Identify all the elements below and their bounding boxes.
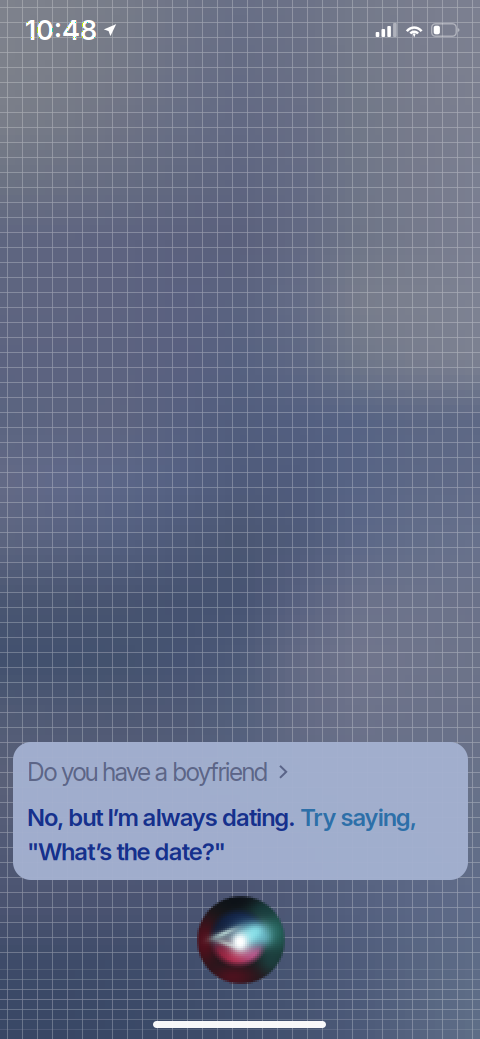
button[interactable]: Do you have a boyfriend — [13, 742, 468, 880]
staticText: 10:48 — [25, 13, 97, 47]
button[interactable]: Siri — [193, 892, 289, 988]
staticText: Do you have a boyfriend — [27, 757, 269, 787]
staticText: "What’s the date?" — [27, 837, 226, 866]
staticText: No, but I’m always dating. — [27, 803, 295, 832]
staticText: Try saying, — [295, 803, 417, 832]
